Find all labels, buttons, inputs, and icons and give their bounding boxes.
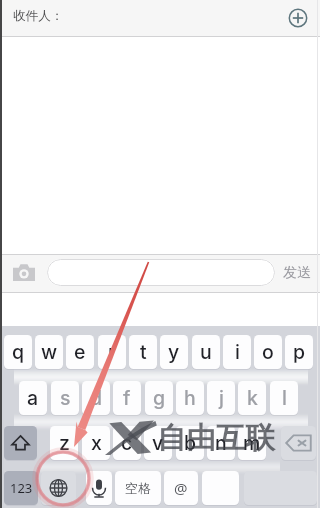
button[interactable]: e bbox=[66, 335, 94, 369]
staticText: b bbox=[184, 431, 197, 455]
button[interactable]: n bbox=[207, 426, 235, 460]
button[interactable]: g bbox=[145, 381, 173, 415]
staticText: h bbox=[184, 386, 196, 410]
staticText: q bbox=[12, 340, 25, 364]
staticText: s bbox=[60, 386, 71, 410]
button[interactable]: k bbox=[238, 381, 266, 415]
staticText: o bbox=[262, 340, 274, 364]
button[interactable]: y bbox=[160, 335, 188, 369]
staticText: 自由互联 bbox=[157, 420, 275, 457]
staticText: f bbox=[123, 386, 131, 410]
staticText: p bbox=[293, 340, 306, 364]
button[interactable]: Emoji bbox=[202, 471, 239, 505]
button[interactable]: p bbox=[285, 335, 313, 369]
staticText: d bbox=[90, 386, 103, 410]
staticText: i bbox=[235, 340, 240, 364]
staticText: z bbox=[59, 431, 70, 455]
staticText: w bbox=[41, 340, 58, 364]
button[interactable]: Dictation bbox=[86, 471, 112, 505]
button[interactable]: u bbox=[192, 335, 220, 369]
staticText: y bbox=[168, 340, 180, 364]
staticText: r bbox=[108, 340, 116, 364]
button[interactable]: z bbox=[50, 426, 78, 460]
button[interactable]: 空格 bbox=[115, 471, 161, 505]
button[interactable]: l bbox=[270, 381, 298, 415]
button[interactable]: Delete bbox=[281, 426, 316, 460]
button[interactable]: Add recipient bbox=[288, 8, 308, 28]
button[interactable]: r bbox=[98, 335, 126, 369]
button[interactable]: Switch keyboard bbox=[41, 471, 76, 505]
button[interactable]: o bbox=[254, 335, 282, 369]
button[interactable]: v bbox=[144, 426, 172, 460]
button[interactable]: h bbox=[176, 381, 204, 415]
staticText: l bbox=[282, 386, 287, 410]
button[interactable]: t bbox=[129, 335, 157, 369]
button[interactable]: j bbox=[207, 381, 235, 415]
staticText: @ bbox=[174, 478, 188, 498]
staticText: t bbox=[140, 340, 147, 364]
staticText: a bbox=[27, 386, 39, 410]
button[interactable]: @ bbox=[164, 471, 198, 505]
staticText: 收件人： bbox=[13, 8, 64, 24]
button[interactable]: x bbox=[82, 426, 110, 460]
staticText: n bbox=[215, 431, 227, 455]
button[interactable] bbox=[47, 259, 275, 286]
staticText: m bbox=[243, 431, 261, 455]
staticText: v bbox=[152, 431, 164, 455]
staticText: k bbox=[247, 386, 258, 410]
staticText: u bbox=[200, 340, 212, 364]
button[interactable]: a bbox=[19, 381, 47, 415]
button[interactable]: q bbox=[4, 335, 32, 369]
button[interactable]: Camera bbox=[13, 264, 35, 281]
staticText: g bbox=[153, 386, 166, 410]
button[interactable]: Shift bbox=[4, 426, 37, 460]
button[interactable]: s bbox=[51, 381, 79, 415]
button[interactable]: 发送 bbox=[281, 263, 313, 283]
staticText: 123 bbox=[10, 479, 33, 497]
button[interactable]: 123 bbox=[4, 471, 38, 505]
staticText: 发送 bbox=[283, 264, 311, 282]
button[interactable]: b bbox=[176, 426, 204, 460]
button[interactable]: c bbox=[113, 426, 141, 460]
staticText: e bbox=[74, 340, 86, 364]
button[interactable]: m bbox=[238, 426, 266, 460]
button[interactable]: f bbox=[113, 381, 141, 415]
staticText: j bbox=[219, 386, 224, 410]
button[interactable]: i bbox=[223, 335, 251, 369]
staticText: c bbox=[121, 431, 133, 455]
button[interactable]: w bbox=[35, 335, 63, 369]
staticText: 空格 bbox=[125, 480, 151, 496]
button[interactable]: d bbox=[82, 381, 110, 415]
staticText: x bbox=[91, 431, 102, 455]
